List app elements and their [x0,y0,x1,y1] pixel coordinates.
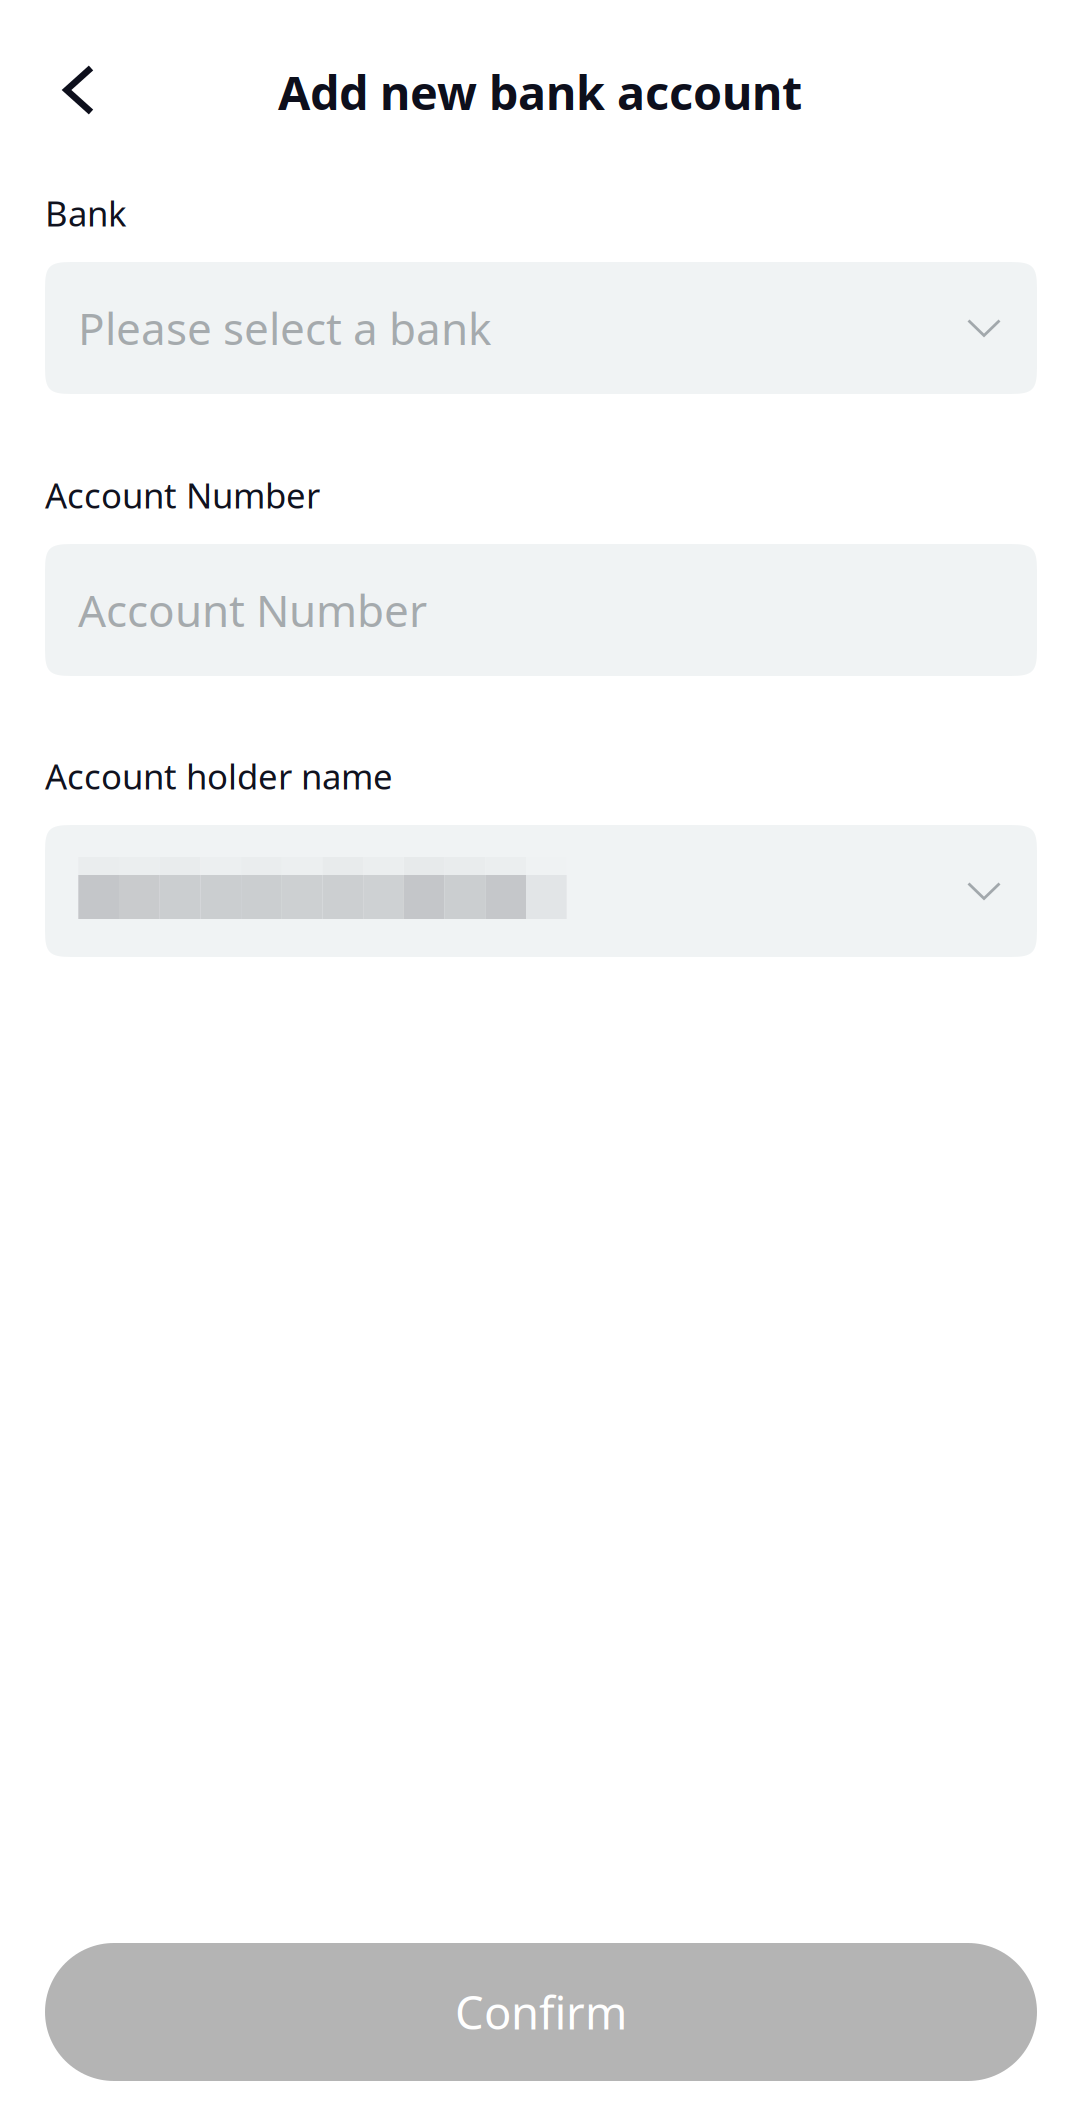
staticText: Account holder name [45,753,393,799]
staticText: Account Number [45,472,320,518]
staticText: Add new bank account [278,61,802,123]
staticText: Confirm [455,1982,627,2042]
staticText: Please select a bank [78,299,491,357]
button[interactable]: Account holder name [45,825,1037,957]
button[interactable]: Back [0,2,116,159]
staticText: Account Number [78,581,427,639]
staticText: Bank [45,190,127,236]
button[interactable]: Confirm [45,1943,1037,2081]
button[interactable]: Bank [45,262,1037,394]
button[interactable]: Account Number [45,544,1037,676]
